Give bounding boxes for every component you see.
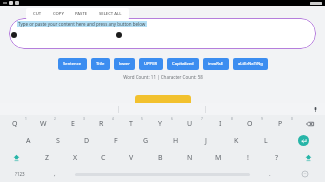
staticText: G (143, 136, 149, 146)
staticText: 6 (171, 117, 173, 121)
staticText: Capitalized (172, 61, 194, 67)
button[interactable]: C (89, 149, 117, 166)
button[interactable] (135, 95, 191, 103)
button[interactable]: M (204, 149, 233, 166)
staticText: Type or paste your content here and pres… (18, 21, 146, 27)
button[interactable]: CUT (32, 11, 43, 17)
staticText: ? (275, 153, 279, 163)
staticText: 9 (261, 117, 263, 121)
button[interactable]: E (58, 115, 87, 132)
button[interactable]: PASTE (74, 11, 89, 17)
button[interactable]: D (72, 132, 101, 149)
button[interactable]: H (161, 132, 191, 149)
button[interactable]: Voice input (311, 105, 319, 113)
staticText: . (269, 170, 271, 178)
button[interactable]: Enter (281, 132, 325, 149)
staticText: 7 (201, 117, 203, 121)
button[interactable]: lower (114, 58, 135, 70)
staticText: O (247, 119, 253, 129)
staticText: SELECT ALL (99, 11, 122, 17)
button[interactable]: COPY (52, 11, 65, 17)
staticText: UPPER (144, 61, 158, 67)
staticText: I (219, 119, 222, 129)
button[interactable]: R (87, 115, 116, 132)
button[interactable]: P (265, 115, 295, 132)
staticText: CUT (33, 11, 42, 17)
button[interactable]: W (29, 115, 58, 132)
button[interactable]: Q (0, 115, 29, 132)
button[interactable]: Capitalized (167, 58, 199, 70)
button[interactable]: V (117, 149, 146, 166)
button[interactable]: N (175, 149, 204, 166)
staticText: H (173, 136, 179, 146)
button[interactable]: Title (91, 58, 110, 70)
button[interactable]: T (116, 115, 145, 132)
button[interactable]: ?123 (0, 166, 39, 182)
button[interactable]: L (251, 132, 281, 149)
staticText: 1 (25, 117, 27, 121)
button[interactable]: K (221, 132, 251, 149)
staticText: J (205, 136, 207, 146)
staticText: 2 (54, 117, 56, 121)
staticText: 8 (231, 117, 233, 121)
staticText: C (101, 153, 106, 163)
staticText: ! (247, 153, 249, 163)
button[interactable]: B (146, 149, 175, 166)
button[interactable]: ? (262, 149, 291, 166)
staticText: 5 (141, 117, 143, 121)
button[interactable]: Emoji (285, 166, 325, 182)
button[interactable]: Comma (39, 166, 70, 182)
button[interactable]: Backspace (295, 115, 325, 132)
button[interactable]: G (131, 132, 161, 149)
button[interactable]: invaRsE (203, 58, 229, 70)
staticText: , (54, 170, 56, 178)
button[interactable]: Space (70, 166, 254, 182)
staticText: 3 (83, 117, 85, 121)
staticText: A (26, 136, 31, 146)
button[interactable]: F (101, 132, 131, 149)
staticText: M (215, 153, 222, 163)
button[interactable]: Shift (0, 149, 33, 166)
button[interactable]: UPPER (139, 58, 163, 70)
staticText: ?123 (15, 171, 25, 177)
staticText: Z (45, 153, 50, 163)
staticText: L (264, 136, 268, 146)
button[interactable]: SELECT ALL (98, 11, 123, 17)
staticText: V (129, 153, 134, 163)
button[interactable]: ! (233, 149, 262, 166)
staticText: P (278, 119, 283, 129)
button[interactable]: Z (33, 149, 61, 166)
staticText: invaRsE (208, 61, 224, 67)
staticText: X (73, 153, 78, 163)
staticText: U (187, 119, 193, 129)
button[interactable]: Sentence (58, 58, 87, 70)
button[interactable]: I (205, 115, 235, 132)
staticText: aLtErNaTiNg (238, 61, 263, 67)
staticText: K (234, 136, 239, 146)
button[interactable]: S (43, 132, 72, 149)
staticText: E (71, 119, 75, 129)
button[interactable]: aLtErNaTiNg (233, 58, 268, 70)
staticText: 4 (112, 117, 114, 121)
staticText: lower (119, 61, 130, 67)
staticText: W (40, 119, 47, 129)
staticText: T (129, 119, 133, 129)
button[interactable]: O (235, 115, 265, 132)
staticText: Q (12, 119, 18, 129)
staticText: Title (96, 61, 105, 67)
button[interactable]: A (14, 132, 43, 149)
staticText: Y (158, 119, 162, 129)
staticText: D (84, 136, 90, 146)
button[interactable]: U (175, 115, 205, 132)
staticText: F (114, 136, 118, 146)
button[interactable]: J (191, 132, 221, 149)
staticText: COPY (53, 11, 64, 17)
staticText: S (56, 136, 60, 146)
button[interactable]: X (61, 149, 89, 166)
staticText: 0 (291, 117, 293, 121)
button[interactable]: Shift (291, 149, 325, 166)
button[interactable]: Type or paste your content here and pres… (9, 18, 316, 49)
staticText: B (158, 153, 163, 163)
button[interactable]: Y (145, 115, 175, 132)
